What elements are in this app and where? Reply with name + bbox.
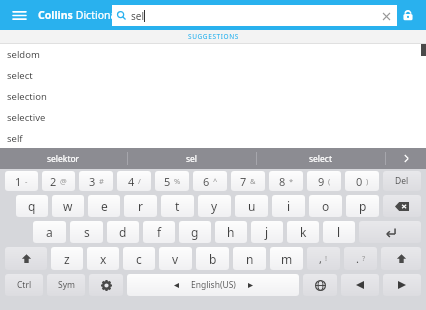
button[interactable]: i [272, 195, 305, 217]
button[interactable]: Shift [381, 247, 421, 270]
button[interactable]: d [107, 221, 139, 243]
button[interactable]: . [344, 247, 377, 270]
staticText: p [359, 198, 367, 214]
button[interactable]: a [33, 221, 66, 243]
button[interactable]: 0 [345, 171, 379, 191]
staticText: - [25, 176, 28, 186]
staticText: d [119, 224, 127, 240]
staticText: j [265, 224, 269, 240]
staticText: f [157, 224, 162, 240]
button[interactable]: sel [128, 148, 256, 169]
button[interactable]: 4 [117, 171, 151, 191]
button[interactable]: n [233, 247, 266, 270]
button[interactable]: Space, English(US) [127, 274, 299, 296]
button[interactable]: , [307, 247, 340, 270]
button[interactable]: Menu [8, 4, 30, 26]
button[interactable]: select [257, 148, 385, 169]
button[interactable]: 8 [269, 171, 303, 191]
button[interactable]: sel [112, 5, 397, 26]
button[interactable]: Ctrl [5, 274, 43, 296]
staticText: Sym [58, 279, 75, 291]
button[interactable]: Backspace [383, 195, 421, 217]
button[interactable]: t [161, 195, 194, 217]
button[interactable]: s [70, 221, 103, 243]
staticText: c [136, 251, 142, 267]
staticText: ? [362, 253, 366, 263]
button[interactable]: self [0, 128, 426, 148]
button[interactable]: 7 [231, 171, 265, 191]
button[interactable]: e [88, 195, 120, 217]
staticText: . [356, 251, 359, 266]
staticText: selektor [47, 153, 80, 165]
staticText: ! [325, 253, 328, 263]
staticText: ) [366, 176, 369, 186]
button[interactable]: p [346, 195, 379, 217]
button[interactable]: selection [0, 86, 426, 107]
button[interactable]: c [123, 247, 155, 270]
button[interactable]: select [0, 65, 426, 86]
button[interactable]: b [196, 247, 229, 270]
button[interactable]: Clear [379, 9, 393, 23]
staticText: Dictionary [73, 8, 127, 22]
button[interactable]: g [179, 221, 211, 243]
staticText: 9 [318, 174, 325, 189]
button[interactable]: Del [383, 171, 421, 191]
button[interactable]: f [143, 221, 175, 243]
staticText: @ [60, 176, 67, 186]
button[interactable]: Sym [47, 274, 85, 296]
staticText: 6 [203, 174, 210, 189]
button[interactable]: o [309, 195, 342, 217]
button[interactable]: Lock [398, 5, 418, 25]
button[interactable]: 9 [307, 171, 341, 191]
button[interactable]: Right [383, 274, 421, 296]
button[interactable]: v [159, 247, 192, 270]
staticText: k [300, 224, 307, 240]
button[interactable]: k [287, 221, 319, 243]
staticText: sel [131, 9, 145, 23]
staticText: v [172, 251, 179, 267]
button[interactable]: 3 [79, 171, 113, 191]
button[interactable]: q [16, 195, 48, 217]
button[interactable]: seldom [0, 44, 426, 65]
button[interactable]: j [251, 221, 283, 243]
button[interactable]: y [198, 195, 231, 217]
staticText: s [84, 224, 90, 240]
button[interactable]: r [124, 195, 157, 217]
staticText: / [138, 176, 141, 186]
button[interactable]: Left [341, 274, 379, 296]
staticText: # [99, 176, 104, 186]
staticText: l [337, 224, 341, 240]
staticText: seldom [7, 48, 40, 61]
button[interactable]: w [52, 195, 84, 217]
button[interactable]: selektor [0, 148, 127, 169]
button[interactable]: selective [0, 107, 426, 128]
button[interactable]: Change language [303, 274, 337, 296]
button[interactable]: 5 [155, 171, 189, 191]
staticText: ^ [213, 176, 218, 186]
staticText: sel [186, 153, 198, 165]
button[interactable]: u [235, 195, 268, 217]
button[interactable]: l [323, 221, 355, 243]
staticText: English(US) [191, 279, 236, 291]
staticText: 2 [50, 174, 57, 189]
staticText: e [101, 198, 108, 214]
button[interactable]: Settings [89, 274, 123, 296]
staticText: 7 [240, 174, 247, 189]
staticText: self [7, 132, 23, 145]
button[interactable]: z [51, 247, 83, 270]
staticText: select [7, 69, 33, 82]
button[interactable]: Enter [359, 221, 421, 243]
button[interactable]: 1 [5, 171, 38, 191]
staticText: h [227, 224, 235, 240]
staticText: i [287, 198, 291, 214]
button[interactable]: More suggestions [386, 148, 426, 169]
staticText: w [63, 198, 73, 214]
staticText: g [191, 224, 199, 240]
button[interactable]: 2 [42, 171, 75, 191]
button[interactable]: Shift [5, 247, 47, 270]
button[interactable]: x [87, 247, 119, 270]
button[interactable]: h [215, 221, 247, 243]
button[interactable]: 6 [193, 171, 227, 191]
staticText: 4 [128, 174, 135, 189]
button[interactable]: m [270, 247, 303, 270]
